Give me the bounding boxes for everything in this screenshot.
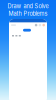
staticText: Math Problems <box>8 10 47 17</box>
staticText: Draw and Solve <box>7 3 48 10</box>
